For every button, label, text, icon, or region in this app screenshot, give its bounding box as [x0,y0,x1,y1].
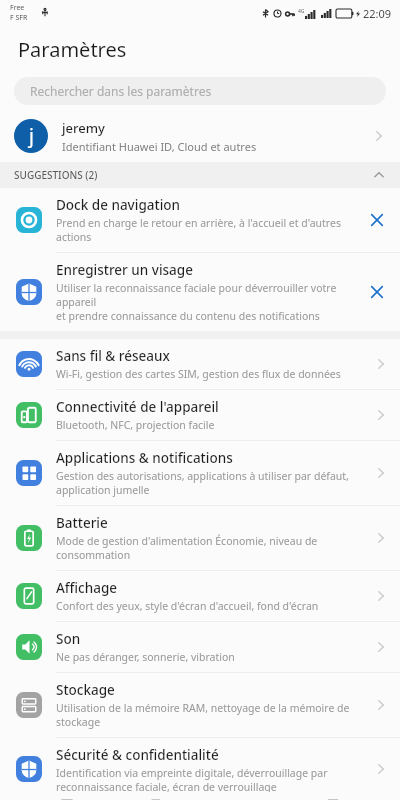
staticText: Dock de navigation [56,196,180,214]
button[interactable]: SUGGESTIONS (2) [0,162,400,188]
staticText: Gestion des autorisations, applications … [56,469,349,497]
button[interactable]: Stockage [0,673,400,737]
button[interactable]: Sans fil & réseaux [0,339,400,389]
staticText: Identification via empreinte digitale, d… [56,766,328,792]
button[interactable]: Connectivité de l'appareil [0,390,400,440]
staticText: Wi-Fi, gestion des cartes SIM, gestion d… [56,367,341,381]
button[interactable]: j [0,110,400,162]
staticText: Utilisation de la mémoire RAM, nettoyage… [56,701,350,729]
staticText: Connectivité de l'appareil [56,398,219,416]
staticText: Paramètres [18,36,127,63]
staticText: Rechercher dans les paramètres [30,83,212,99]
staticText: 22:09 [363,6,392,21]
button[interactable]: Batterie [0,506,400,570]
button[interactable]: Enregistrer un visage [0,253,400,331]
staticText: Utiliser la reconnaissance faciale pour … [56,281,358,323]
button[interactable]: Dock de navigation [0,188,400,252]
staticText: Sécurité & confidentialité [56,746,219,764]
button[interactable]: Dismiss Dock de navigation [364,207,390,233]
staticText: Confort des yeux, style d'écran d'accuei… [56,599,319,613]
staticText: Mode de gestion d'alimentation Économie,… [56,534,368,562]
button[interactable]: Applications & notifications [0,441,400,505]
staticText: SUGGESTIONS (2) [14,168,98,182]
staticText: Ne pas déranger, sonnerie, vibration [56,650,235,664]
staticText: Sans fil & réseaux [56,347,170,365]
staticText: Free [10,3,25,13]
staticText: F SFR [10,13,28,23]
staticText: jeremy [62,119,105,137]
staticText: Affichage [56,579,118,597]
button[interactable]: Rechercher dans les paramètres [14,77,386,105]
staticText: 4G [298,8,305,15]
staticText: Applications & notifications [56,449,233,467]
staticText: Stockage [56,681,115,699]
staticText: Enregistrer un visage [56,261,193,279]
staticText: j [29,123,34,149]
staticText: Son [56,630,81,648]
staticText: Prend en charge le retour en arrière, à … [56,216,358,244]
button[interactable]: Affichage [0,571,400,621]
button[interactable]: Dismiss Enregistrer un visage [364,279,390,305]
staticText: Identifiant Huawei ID, Cloud et autres [62,139,257,154]
other: Collapse suggestions [372,168,386,182]
button[interactable]: Sécurité & confidentialité [0,738,400,800]
staticText: Batterie [56,514,108,532]
staticText: Bluetooth, NFC, projection facile [56,418,215,432]
button[interactable]: Son [0,622,400,672]
